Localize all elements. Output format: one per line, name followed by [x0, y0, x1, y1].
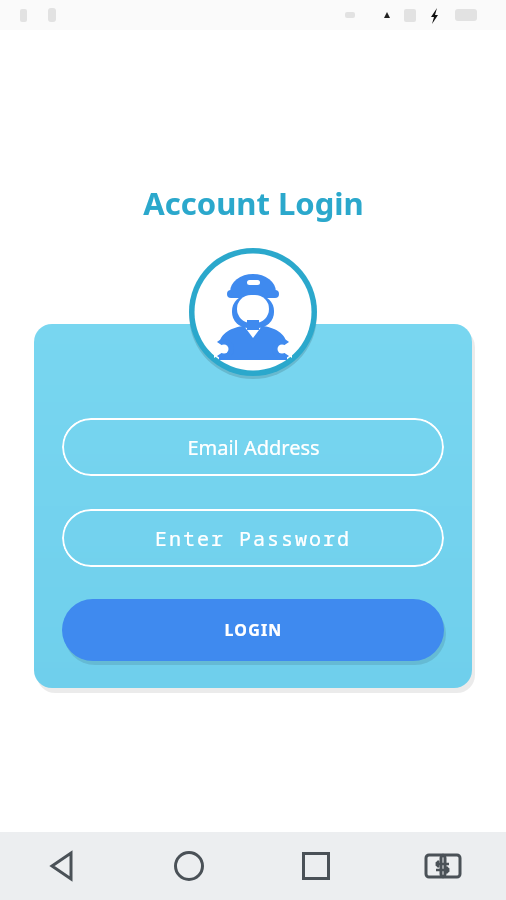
staticText: Email Address	[187, 434, 320, 461]
button[interactable]: Back	[0, 832, 126, 900]
button[interactable]: Recents	[252, 832, 379, 900]
button[interactable]: Home	[126, 832, 252, 900]
button[interactable]: LOGIN	[62, 599, 444, 661]
staticText: Account Login	[143, 182, 364, 224]
button[interactable]: Enter Password	[62, 509, 444, 567]
button[interactable]: Split screen	[379, 832, 506, 900]
staticText: LOGIN	[224, 619, 283, 641]
button[interactable]: Email Address	[62, 418, 444, 476]
staticText: Enter Password	[155, 525, 351, 552]
